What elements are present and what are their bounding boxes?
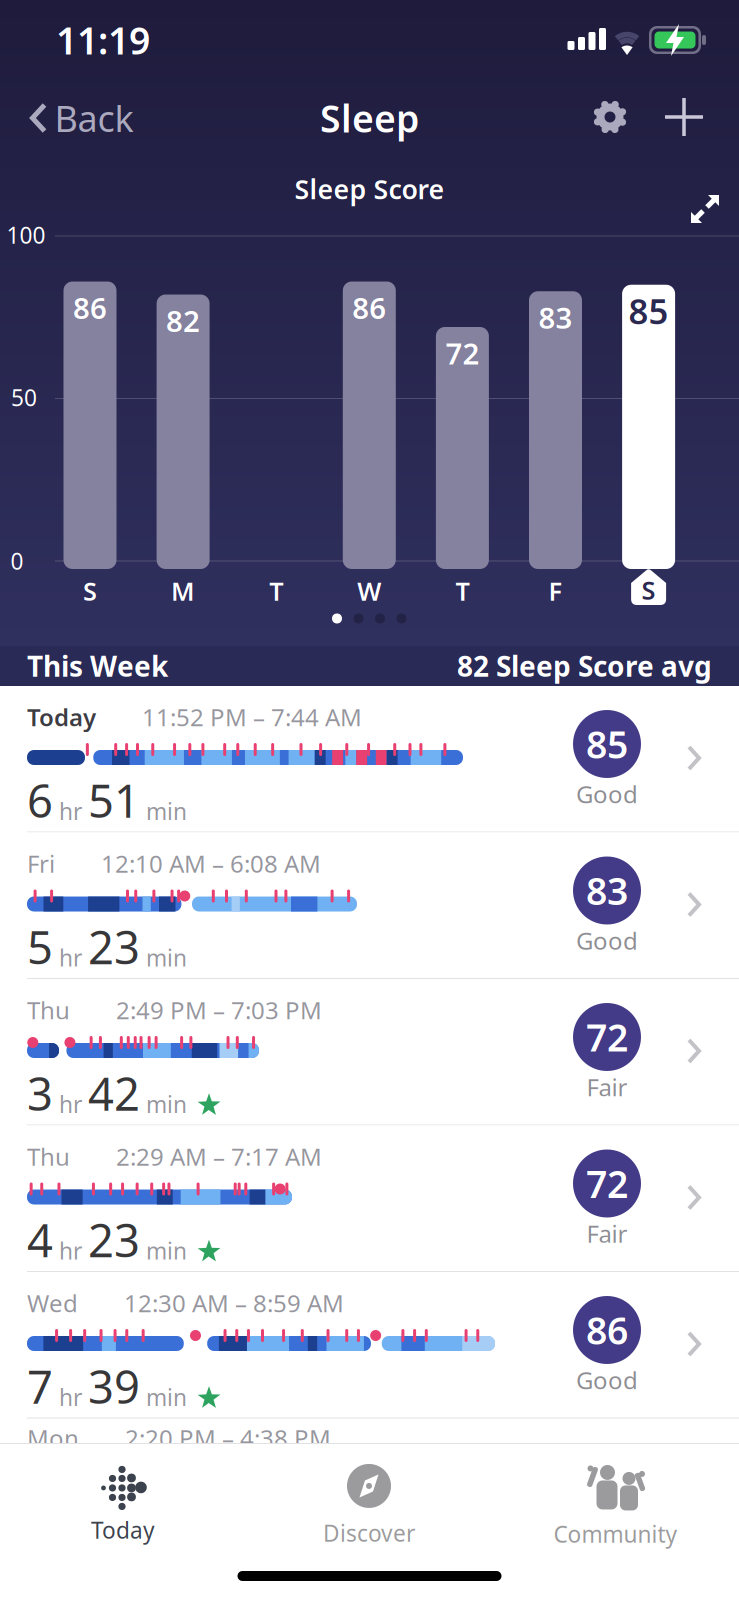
staticText: 11:52 PM – 7:44 AM (142, 701, 362, 733)
staticText: M (171, 574, 195, 608)
staticText: Thu (27, 1140, 70, 1172)
button[interactable]: Community (492, 1461, 739, 1551)
button[interactable]: Discover (246, 1461, 492, 1551)
staticText: min (146, 796, 187, 826)
staticText: T (269, 574, 283, 608)
staticText: 42 (88, 1063, 140, 1123)
staticText: 6 (27, 770, 53, 830)
staticText: 82 Sleep Score avg (457, 647, 712, 685)
staticText: 86 (352, 288, 386, 327)
staticText: hr (59, 1089, 82, 1119)
staticText: 82 (166, 301, 200, 340)
staticText: 83 (586, 866, 628, 915)
staticText: Fair (586, 1071, 627, 1103)
staticText: 72 (586, 1159, 628, 1208)
staticText: This Week (27, 647, 168, 685)
staticText: Sleep Score (294, 171, 444, 207)
staticText: 0 (10, 546, 23, 576)
button[interactable]: Settings (592, 99, 628, 135)
staticText: S (642, 573, 656, 607)
staticText: Thu (27, 994, 70, 1026)
button[interactable]: Today (0, 1461, 246, 1551)
staticText: 7 (27, 1356, 53, 1416)
staticText: Mon (27, 1422, 79, 1454)
button[interactable]: Back (22, 96, 142, 140)
staticText: Discover (323, 1518, 415, 1548)
staticText: hr (59, 796, 82, 826)
button[interactable]: Today (0, 686, 739, 832)
staticText: min (146, 1089, 187, 1119)
button[interactable]: Fri (0, 832, 739, 979)
staticText: hr (59, 1236, 82, 1266)
button[interactable]: Wed (0, 1272, 739, 1418)
staticText: 12:10 AM – 6:08 AM (101, 847, 321, 879)
staticText: Fri (27, 847, 55, 879)
staticText: 2:49 PM – 7:03 PM (116, 994, 322, 1026)
button[interactable]: Add (665, 98, 703, 136)
staticText: 85 (586, 719, 628, 769)
staticText: 12:30 AM – 8:59 AM (124, 1287, 344, 1319)
staticText: 23 (88, 1209, 140, 1270)
staticText: 11:19 (56, 15, 150, 65)
staticText: hr (59, 943, 82, 973)
staticText: Back (54, 94, 133, 142)
staticText: Good (576, 925, 638, 956)
staticText: 72 (445, 333, 479, 372)
staticText: 23 (88, 916, 140, 977)
staticText: 86 (73, 288, 107, 327)
button[interactable]: Thu (0, 979, 739, 1125)
staticText: T (455, 574, 469, 608)
staticText: 83 (538, 298, 572, 337)
staticText: min (146, 1382, 187, 1412)
staticText: 39 (88, 1356, 140, 1416)
staticText: Good (576, 778, 638, 810)
staticText: 50 (11, 382, 37, 412)
staticText: 3 (27, 1063, 53, 1123)
staticText: Community (553, 1519, 677, 1549)
staticText: min (146, 1236, 187, 1266)
staticText: hr (59, 1382, 82, 1412)
staticText: Wed (27, 1287, 78, 1319)
staticText: 4 (27, 1209, 53, 1270)
staticText: Good (576, 1364, 638, 1396)
staticText: Today (91, 1515, 155, 1545)
staticText: S (83, 574, 97, 608)
staticText: min (146, 943, 187, 973)
staticText: W (357, 574, 381, 608)
staticText: 72 (586, 1012, 628, 1062)
staticText: Sleep (320, 93, 419, 143)
staticText: 100 (6, 220, 45, 250)
staticText: 2:20 PM – 4:38 PM (125, 1422, 331, 1454)
staticText: 5 (27, 916, 53, 977)
staticText: 2:29 AM – 7:17 AM (116, 1140, 322, 1172)
staticText: F (548, 574, 562, 608)
staticText: 51 (88, 770, 140, 830)
staticText: 86 (586, 1305, 628, 1355)
staticText: Fair (586, 1218, 627, 1249)
button[interactable]: Thu (0, 1125, 739, 1272)
staticText: Today (27, 701, 96, 733)
staticText: 85 (629, 288, 669, 334)
button[interactable]: Expand chart (690, 194, 720, 224)
